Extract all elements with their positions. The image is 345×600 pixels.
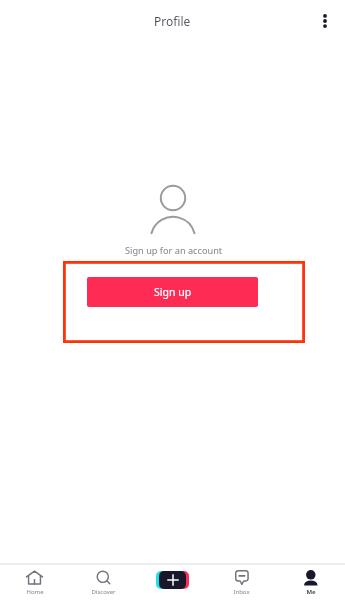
button[interactable]: Sign up [87,277,258,307]
button[interactable]: Discover [69,565,138,600]
staticText: Discover [91,588,116,596]
staticText: Inbox [233,588,250,596]
staticText: Sign up for an account [125,244,223,257]
button[interactable]: Create [138,565,207,600]
staticText: Sign up [154,285,192,299]
button[interactable]: Home [0,565,69,600]
button[interactable]: Inbox [207,565,276,600]
staticText: Me [306,588,316,596]
button[interactable]: More options [309,5,341,37]
button[interactable]: Me [276,565,345,600]
staticText: Profile [154,13,191,29]
staticText: Home [26,588,44,596]
